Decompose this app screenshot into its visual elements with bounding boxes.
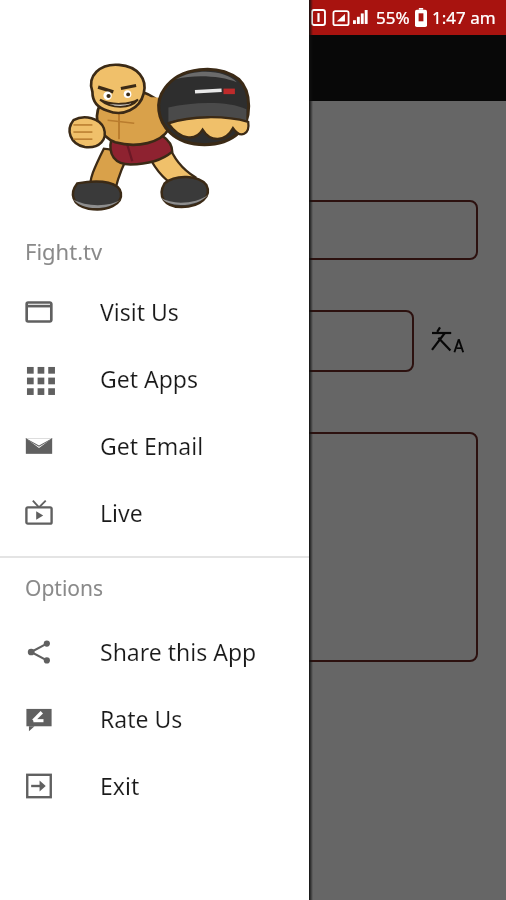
staticText: 1:47 am	[432, 6, 496, 29]
staticText: Live	[100, 497, 143, 528]
staticText: 55%	[376, 6, 410, 29]
staticText: Rate Us	[100, 703, 183, 734]
staticText: Visit Us	[100, 296, 179, 327]
other: Translate	[428, 321, 468, 361]
staticText: Translation app	[72, 51, 254, 85]
staticText: Fight.tv	[25, 236, 103, 266]
staticText: Translate	[40, 446, 148, 480]
button[interactable]: Live	[0, 479, 309, 546]
button[interactable]: Exit	[0, 752, 309, 819]
staticText: Get Email	[100, 430, 204, 461]
button[interactable]: Visit Us	[0, 278, 309, 345]
button[interactable]: Get Apps	[0, 345, 309, 412]
staticText: Not connected	[26, 145, 218, 180]
staticText: Get Apps	[100, 363, 199, 394]
staticText: Share this App	[100, 636, 257, 667]
button[interactable]: Get Email	[0, 412, 309, 479]
button[interactable]: Share this App	[0, 618, 309, 685]
staticText: Exit	[100, 770, 140, 801]
staticText: Options	[25, 574, 104, 603]
button[interactable]: Rate Us	[0, 685, 309, 752]
